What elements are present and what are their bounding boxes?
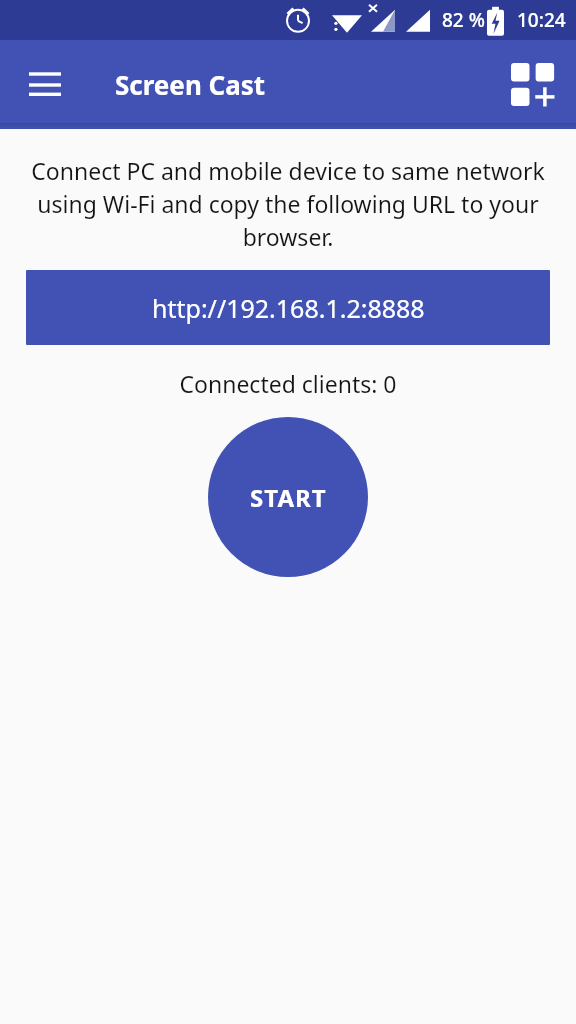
- button[interactable]: START: [208, 417, 368, 577]
- button[interactable]: http://192.168.1.2:8888: [26, 270, 550, 345]
- staticText: Screen Cast: [115, 67, 266, 102]
- button[interactable]: Add widget: [502, 54, 564, 116]
- button[interactable]: Open navigation menu: [14, 54, 76, 116]
- staticText: START: [250, 481, 327, 514]
- staticText: 82 %: [442, 7, 485, 33]
- staticText: 10:24: [517, 7, 566, 33]
- staticText: http://192.168.1.2:8888: [152, 291, 425, 325]
- staticText: Connected clients: 0: [0, 368, 576, 399]
- staticText: Connect PC and mobile device to same net…: [30, 155, 546, 253]
